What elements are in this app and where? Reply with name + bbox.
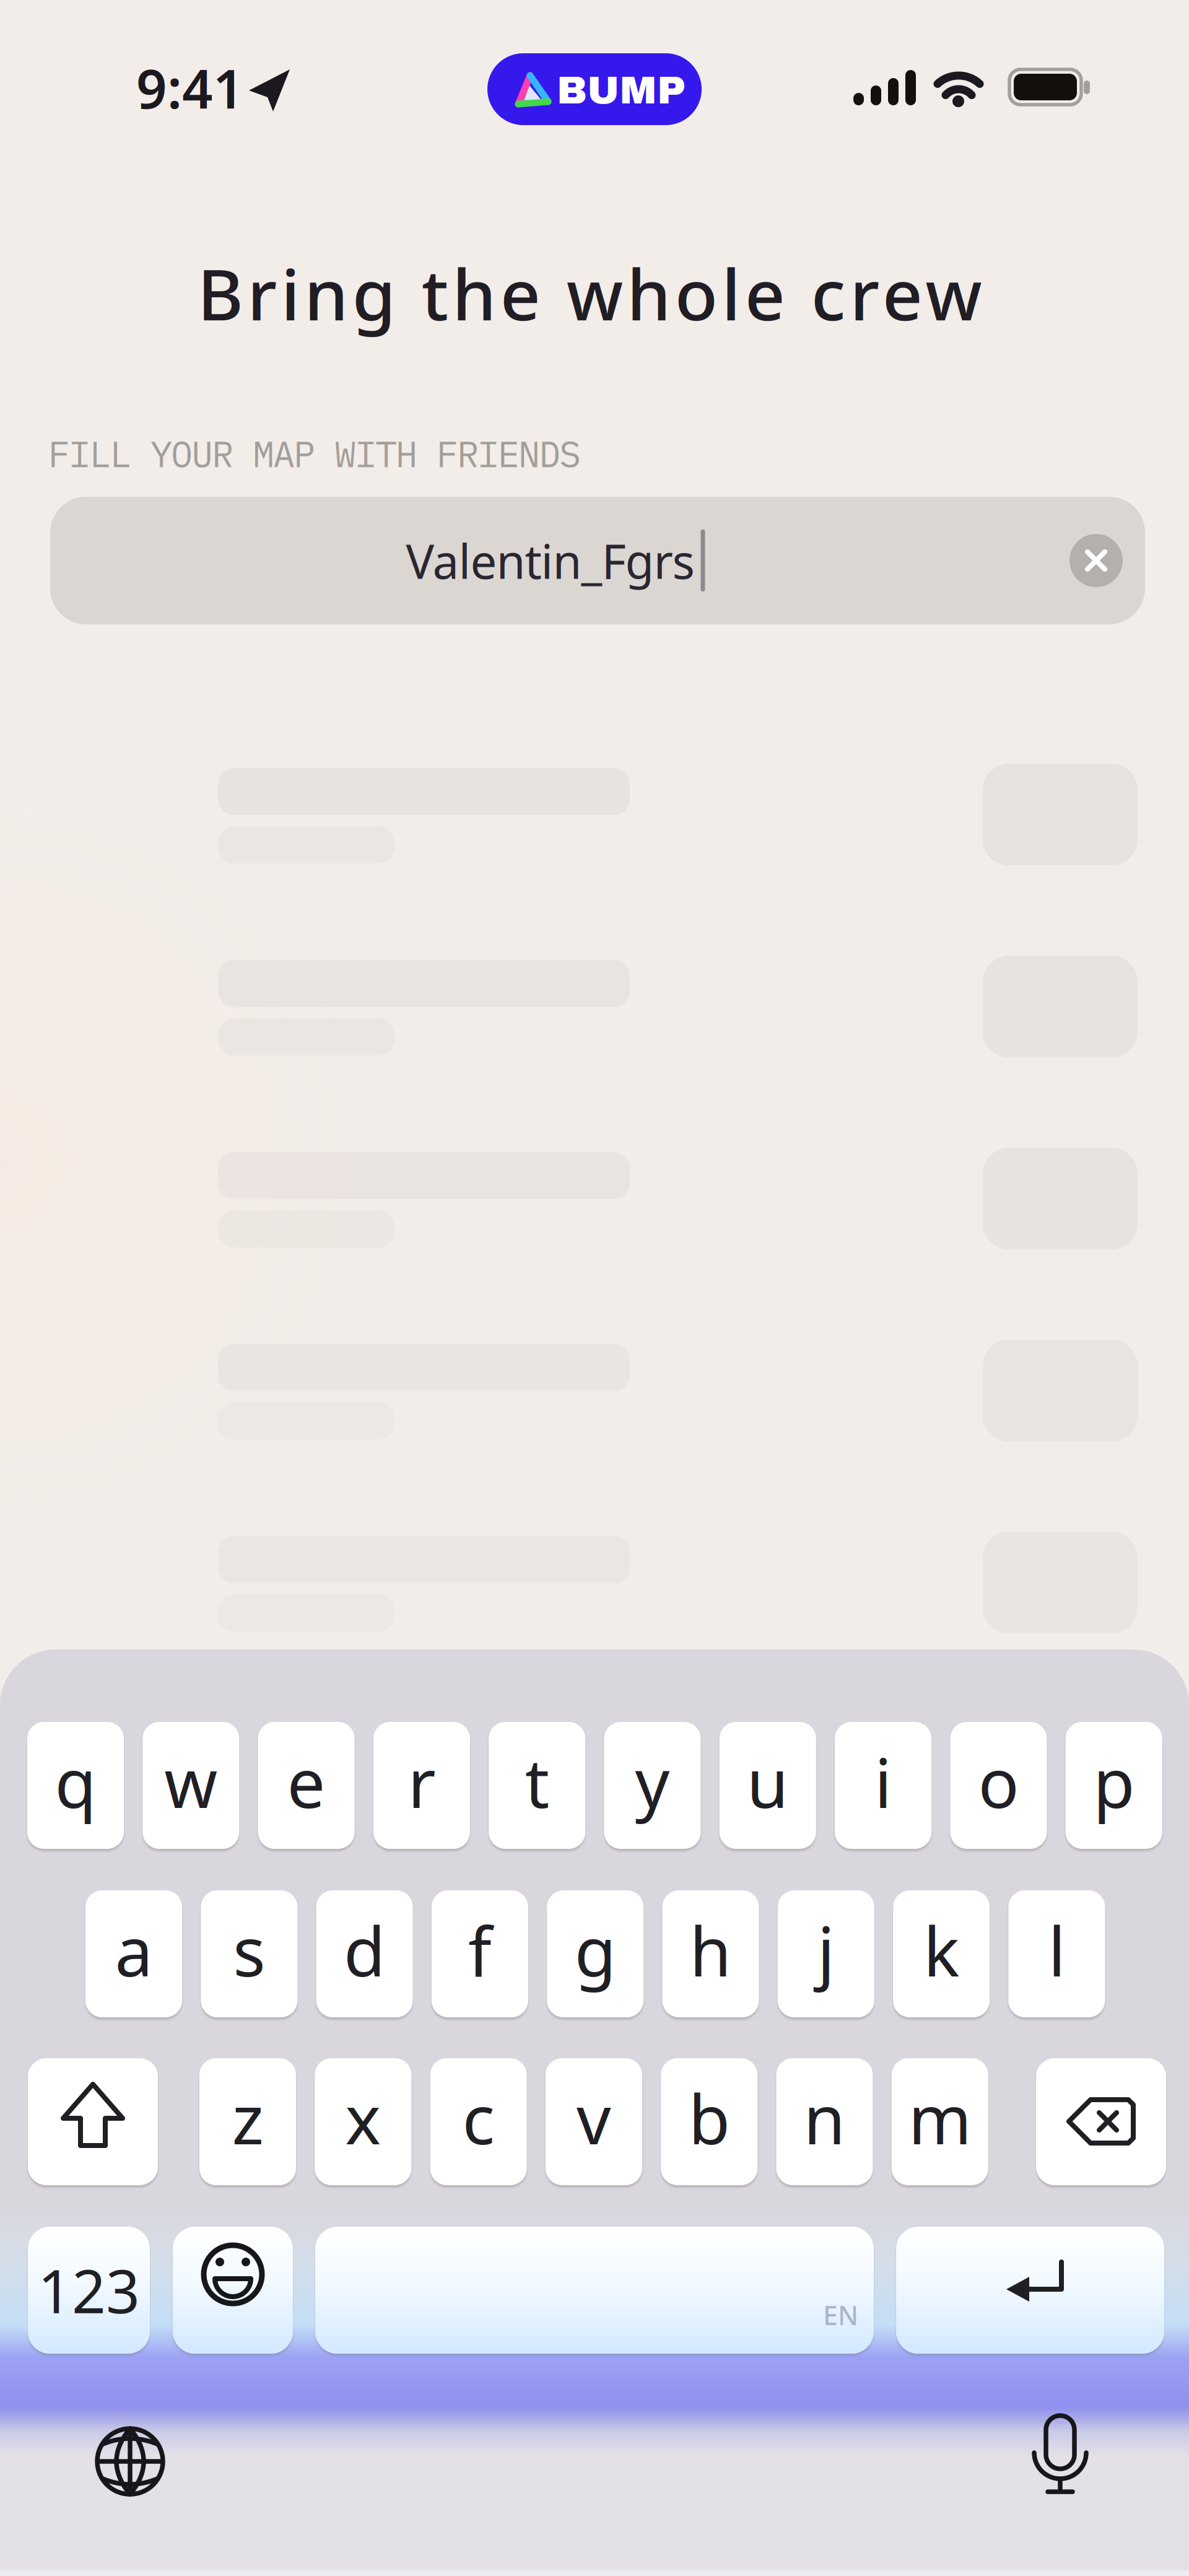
staticText: FILL YOUR MAP WITH FRIENDS — [48, 430, 581, 477]
staticText: m — [908, 2073, 972, 2163]
staticText: u — [747, 1737, 789, 1827]
staticText: r — [408, 1737, 436, 1827]
staticText: e — [287, 1737, 325, 1827]
staticText: k — [923, 1905, 959, 1995]
staticText: f — [468, 1905, 492, 1995]
button[interactable]: p — [1066, 1722, 1162, 1849]
button[interactable]: 123 — [28, 2227, 150, 2354]
staticText: l — [1048, 1905, 1065, 1995]
button[interactable]: q — [27, 1722, 124, 1849]
button[interactable] — [173, 2227, 293, 2354]
staticText: x — [345, 2073, 381, 2163]
staticText: j — [817, 1905, 835, 1995]
button[interactable]: v — [546, 2058, 642, 2185]
staticText: h — [690, 1905, 732, 1995]
button[interactable]: t — [489, 1722, 585, 1849]
button[interactable]: r — [373, 1722, 470, 1849]
button[interactable]: l — [1008, 1890, 1105, 2017]
staticText: c — [462, 2073, 495, 2163]
button[interactable]: Valentin_Fgrs — [50, 497, 1145, 624]
staticText: a — [115, 1905, 153, 1995]
button[interactable]: g — [547, 1890, 644, 2017]
button[interactable]: n — [776, 2058, 873, 2185]
staticText: d — [344, 1905, 385, 1995]
staticText: BUMP — [557, 69, 685, 112]
button[interactable]: h — [662, 1890, 759, 2017]
button[interactable]: m — [892, 2058, 988, 2185]
button[interactable]: u — [719, 1722, 816, 1849]
button[interactable]: c — [430, 2058, 527, 2185]
staticText: Bring the whole crew — [197, 247, 982, 340]
button[interactable] — [1030, 2413, 1090, 2495]
button[interactable]: d — [316, 1890, 413, 2017]
staticText: 9:41 — [136, 52, 244, 123]
button[interactable]: b — [661, 2058, 757, 2185]
button[interactable]: EN — [315, 2227, 874, 2354]
button[interactable]: s — [201, 1890, 297, 2017]
staticText: b — [688, 2073, 730, 2163]
button[interactable] — [94, 2425, 166, 2497]
button[interactable]: y — [604, 1722, 701, 1849]
button[interactable]: x — [315, 2058, 411, 2185]
staticText: p — [1093, 1737, 1135, 1827]
button[interactable] — [28, 2058, 158, 2185]
button[interactable]: k — [893, 1890, 990, 2017]
staticText: t — [525, 1737, 549, 1827]
staticText: v — [576, 2073, 611, 2163]
staticText: EN — [823, 2297, 858, 2332]
button[interactable]: BUMP — [487, 53, 702, 125]
staticText: z — [232, 2073, 263, 2163]
button[interactable]: f — [432, 1890, 528, 2017]
staticText: Valentin_Fgrs — [406, 529, 695, 592]
button[interactable]: j — [778, 1890, 874, 2017]
staticText: n — [804, 2073, 846, 2163]
button[interactable]: a — [85, 1890, 182, 2017]
button[interactable]: w — [143, 1722, 239, 1849]
button[interactable]: i — [835, 1722, 931, 1849]
staticText: y — [635, 1737, 670, 1827]
staticText: g — [574, 1905, 616, 1995]
button[interactable]: z — [199, 2058, 296, 2185]
staticText: w — [164, 1737, 218, 1827]
staticText: q — [55, 1737, 96, 1827]
button[interactable]: o — [950, 1722, 1047, 1849]
staticText: 123 — [38, 2251, 140, 2330]
staticText: s — [233, 1905, 265, 1995]
button[interactable] — [896, 2227, 1164, 2354]
button[interactable] — [1036, 2058, 1166, 2185]
staticText: o — [978, 1737, 1019, 1827]
button[interactable]: e — [258, 1722, 355, 1849]
staticText: i — [874, 1737, 892, 1827]
